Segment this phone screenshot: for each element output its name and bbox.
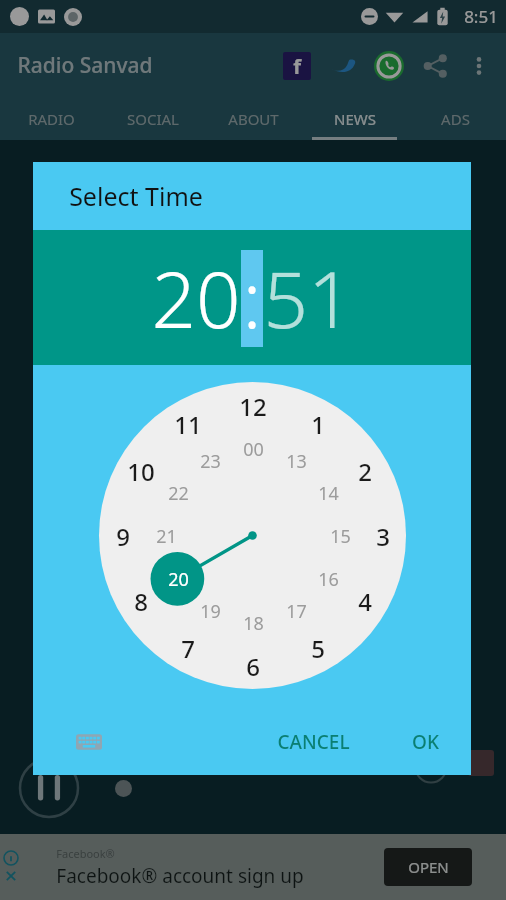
- button[interactable]: 20: [158, 559, 198, 599]
- staticText: RADIO: [28, 109, 75, 129]
- button[interactable]: 19: [190, 591, 230, 631]
- button[interactable]: WhatsApp: [366, 43, 412, 89]
- button[interactable]: Twitter: [320, 43, 366, 89]
- button[interactable]: 22: [158, 473, 198, 513]
- staticText: 7: [181, 632, 195, 665]
- staticText: 20: [151, 245, 241, 351]
- button[interactable]: 17: [276, 591, 316, 631]
- staticText: 3: [376, 520, 390, 553]
- button[interactable]: Facebook: [274, 43, 320, 89]
- staticText: Select Time: [69, 179, 203, 213]
- button[interactable]: 12: [233, 386, 273, 426]
- staticText: SOCIAL: [127, 109, 179, 129]
- staticText: 23: [200, 449, 221, 474]
- staticText: :: [242, 245, 262, 351]
- staticText: ADS: [441, 109, 470, 129]
- button[interactable]: Share: [412, 43, 458, 89]
- staticText: Stereo Sound): [112, 752, 231, 777]
- button[interactable]: RADIO: [0, 98, 102, 140]
- staticText: OPEN: [408, 857, 449, 877]
- staticText: f: [293, 53, 301, 80]
- staticText: ABOUT: [228, 109, 279, 129]
- staticText: 20: [168, 567, 189, 592]
- button[interactable]: 4: [345, 581, 385, 621]
- staticText: Facebook®: [56, 846, 115, 861]
- staticText: 18: [243, 611, 264, 636]
- staticText: 2: [358, 455, 372, 488]
- button[interactable]: 15: [320, 516, 360, 556]
- button[interactable]: 16: [308, 559, 348, 599]
- button[interactable]: 00: [233, 429, 273, 469]
- staticText: 9: [116, 520, 130, 553]
- button[interactable]: 3: [363, 516, 403, 556]
- button[interactable]: 14: [308, 473, 348, 513]
- staticText: 00: [243, 437, 264, 462]
- staticText: 13: [286, 449, 307, 474]
- button[interactable]: 11: [168, 404, 208, 444]
- staticText: 17: [286, 599, 307, 624]
- button[interactable]: Switch to keyboard input: [73, 726, 105, 758]
- staticText: 10: [127, 455, 155, 488]
- button[interactable]: 51: [263, 245, 353, 351]
- button[interactable]: NEWS: [304, 98, 405, 140]
- staticText: 14: [318, 481, 339, 506]
- button[interactable]: More options: [458, 45, 500, 87]
- button[interactable]: 13: [276, 441, 316, 481]
- button[interactable]: SOCIAL: [102, 98, 203, 140]
- staticText: 19: [200, 599, 221, 624]
- button[interactable]: 9: [103, 516, 143, 556]
- button[interactable]: 21: [146, 516, 186, 556]
- button[interactable]: 23: [190, 441, 230, 481]
- staticText: 51: [263, 245, 353, 351]
- button[interactable]: ADS: [405, 98, 506, 140]
- staticText: Facebook® account sign up: [56, 863, 304, 889]
- staticText: 8:51: [464, 5, 498, 28]
- staticText: 15: [330, 524, 351, 549]
- button[interactable]: 6: [233, 646, 273, 686]
- button[interactable]: 5: [298, 628, 338, 668]
- staticText: 21: [156, 524, 177, 549]
- staticText: 1: [311, 408, 325, 441]
- staticText: Radio Sanvad: [17, 51, 153, 80]
- button[interactable]: 2: [345, 451, 385, 491]
- button[interactable]: OPEN: [384, 848, 472, 886]
- button[interactable]: 18: [233, 603, 273, 643]
- staticText: OK: [412, 729, 439, 755]
- staticText: 6: [246, 650, 260, 683]
- button[interactable]: CANCEL: [263, 719, 364, 765]
- staticText: 22: [168, 481, 189, 506]
- button[interactable]: 1: [298, 404, 338, 444]
- staticText: 12: [239, 390, 267, 423]
- staticText: 16: [318, 567, 339, 592]
- staticText: 4: [358, 585, 372, 618]
- staticText: CANCEL: [277, 729, 350, 755]
- button[interactable]: 8: [121, 581, 161, 621]
- button[interactable]: 7: [168, 628, 208, 668]
- staticText: 11: [174, 408, 202, 441]
- button[interactable]: 20: [151, 245, 241, 351]
- button[interactable]: 10: [121, 451, 161, 491]
- staticText: NEWS: [334, 109, 376, 129]
- staticText: 5: [311, 632, 325, 665]
- button[interactable]: OK: [398, 719, 453, 765]
- button[interactable]: ABOUT: [203, 98, 304, 140]
- staticText: 8: [134, 585, 148, 618]
